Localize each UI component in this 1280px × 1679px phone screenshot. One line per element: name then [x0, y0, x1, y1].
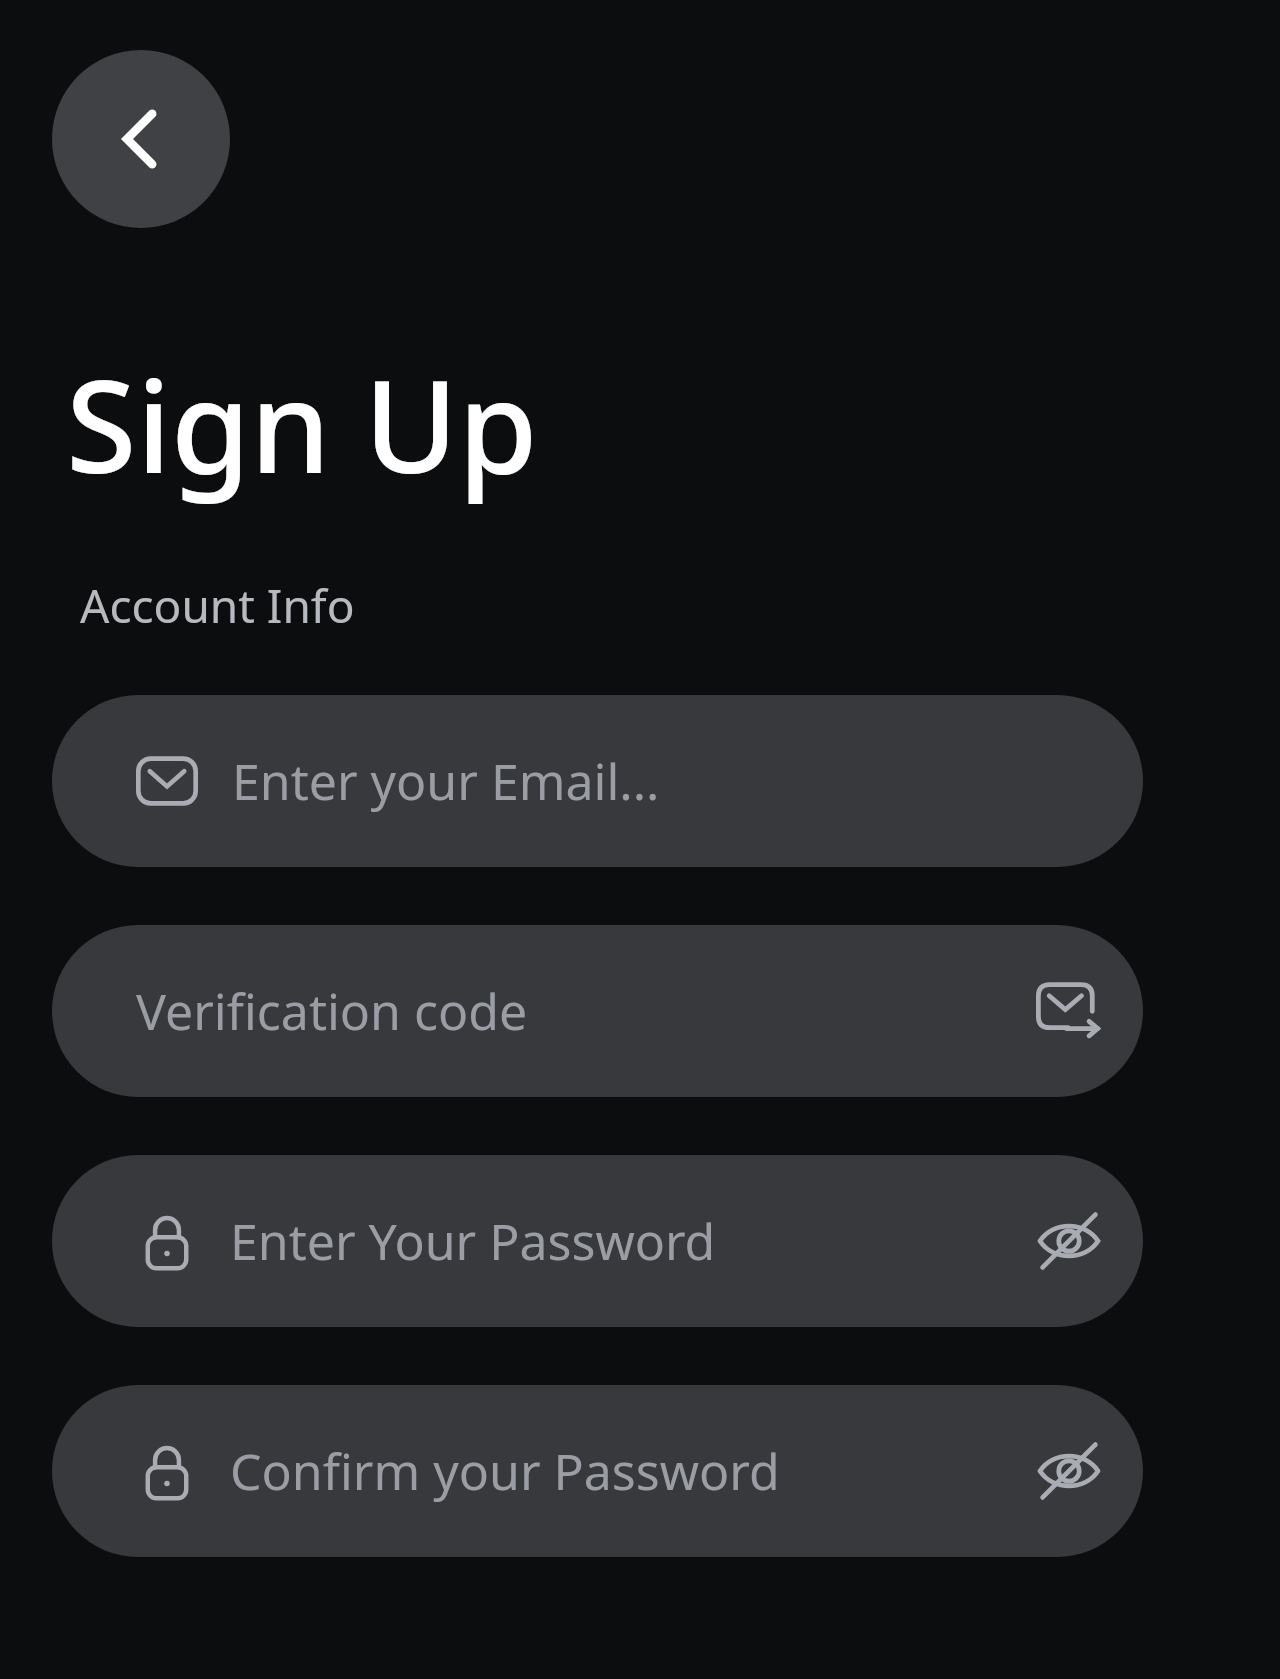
button[interactable]: Confirm your Password — [52, 1385, 1143, 1557]
button[interactable]: Back — [52, 50, 230, 228]
staticText: Sign Up — [66, 336, 538, 510]
button[interactable]: Enter your Email... — [52, 695, 1143, 867]
button[interactable]: Enter Your Password — [52, 1155, 1143, 1327]
button[interactable]: Show confirm password — [1019, 1421, 1119, 1521]
button[interactable]: Show password — [1019, 1191, 1119, 1291]
staticText: Enter your Email... — [232, 747, 1103, 815]
staticText: Account Info — [80, 574, 355, 637]
staticText: Verification code — [136, 977, 1019, 1045]
staticText: Confirm your Password — [230, 1437, 1019, 1505]
button[interactable]: Send verification code — [1019, 961, 1119, 1061]
staticText: Enter Your Password — [230, 1207, 1019, 1275]
button[interactable]: Verification code — [52, 925, 1143, 1097]
